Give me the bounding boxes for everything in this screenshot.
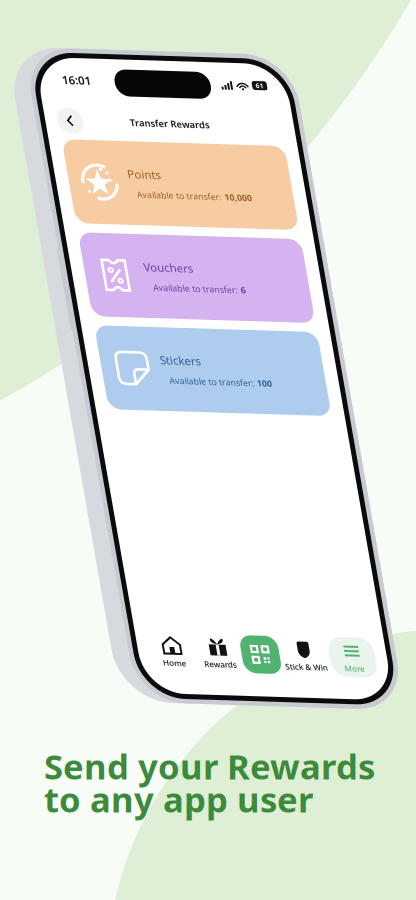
button[interactable]: Stickers [68,602,416,770]
staticText: Send your Rewards [44,743,375,789]
staticText: Available to transfer: [200,324,369,347]
staticText: Transfer Rewards [211,180,370,204]
button[interactable]: Back [66,166,118,218]
staticText: Available to transfer: [200,510,369,533]
button[interactable]: Points [68,230,416,398]
staticText: 16:01 [90,95,148,125]
staticText: Points [188,280,255,310]
staticText: Stickers [188,652,270,682]
staticText: to any app user [44,776,313,822]
staticText: 100 [375,696,405,719]
button[interactable]: Vouchers [68,416,416,584]
staticText: Available to transfer: [200,696,369,719]
